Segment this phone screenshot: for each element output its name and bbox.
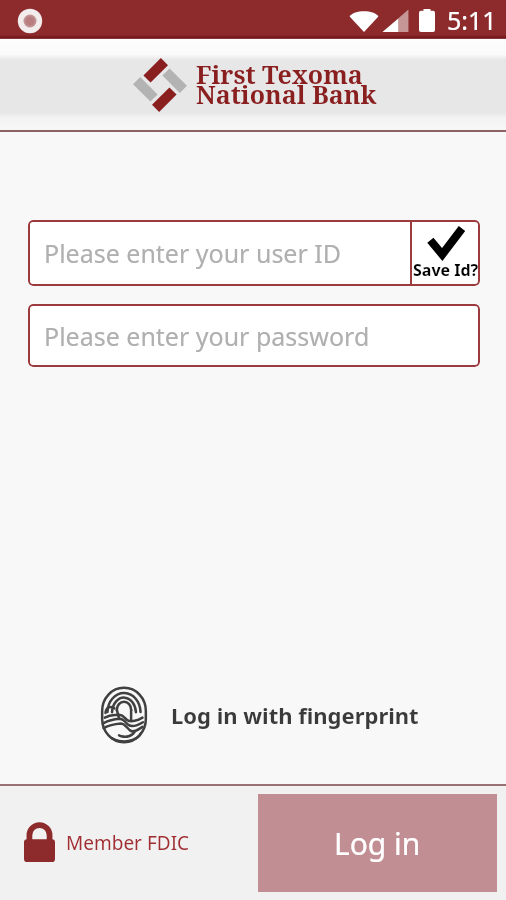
staticText: Member FDIC xyxy=(66,830,190,856)
button[interactable]: Log in xyxy=(258,794,497,892)
staticText: Please enter your password xyxy=(44,319,370,353)
staticText: First Texoma National Bank xyxy=(196,57,377,112)
button[interactable]: Save Id xyxy=(412,220,480,286)
button[interactable]: Member FDIC xyxy=(24,824,190,862)
staticText: 5:11 xyxy=(447,3,497,37)
staticText: Please enter your user ID xyxy=(44,236,342,270)
staticText: Save Id? xyxy=(413,259,479,281)
other: Notification xyxy=(17,8,43,34)
button[interactable]: Please enter your password xyxy=(28,304,480,367)
staticText: Log in xyxy=(334,823,421,864)
button[interactable]: Log in with fingerprint xyxy=(94,682,425,748)
button[interactable]: Please enter your user ID xyxy=(28,220,410,286)
staticText: Log in with fingerprint xyxy=(171,700,419,730)
